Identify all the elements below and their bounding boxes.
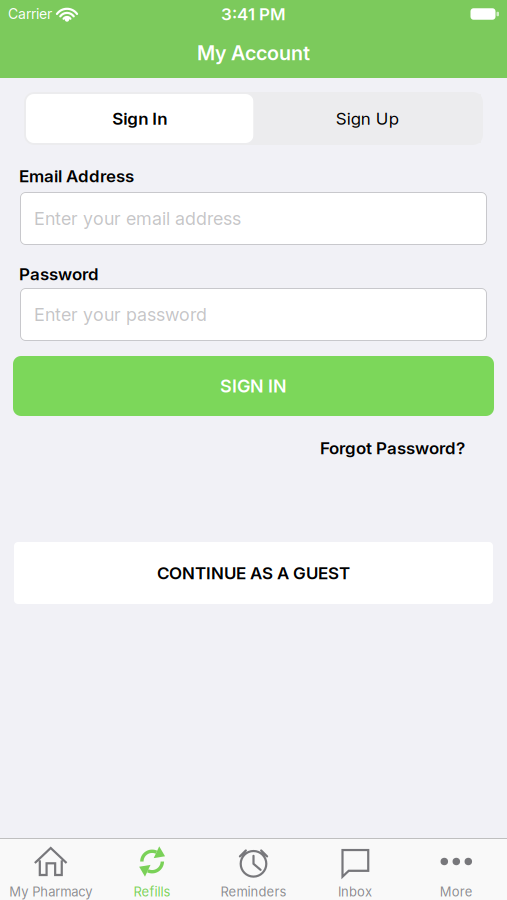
button[interactable]: CONTINUE AS A GUEST (0, 542, 507, 604)
button[interactable]: Sign In (26, 94, 253, 143)
button[interactable]: Forgot Password? (320, 438, 465, 458)
button[interactable]: Reminders (203, 845, 304, 899)
button[interactable]: Refills (101, 845, 203, 899)
staticText: Reminders (220, 884, 286, 899)
button[interactable]: SIGN IN (0, 356, 507, 416)
button[interactable]: My Pharmacy (0, 845, 101, 899)
staticText: Password (19, 264, 99, 284)
staticText: My Account (197, 41, 310, 65)
staticText: Forgot Password? (320, 438, 465, 458)
staticText: Carrier (8, 6, 52, 22)
staticText: Email Address (19, 166, 134, 186)
staticText: Enter your password (34, 304, 207, 325)
staticText: SIGN IN (220, 375, 287, 397)
staticText: Enter your email address (34, 208, 241, 229)
button[interactable]: More (406, 845, 507, 899)
button[interactable]: Sign Up (253, 94, 481, 143)
staticText: More (440, 884, 473, 899)
staticText: My Pharmacy (9, 884, 92, 899)
button[interactable]: Inbox (304, 845, 406, 899)
staticText: Sign In (112, 108, 167, 129)
staticText: Inbox (338, 884, 372, 899)
staticText: 3:41 PM (221, 4, 286, 24)
staticText: Sign Up (336, 108, 399, 129)
staticText: CONTINUE AS A GUEST (157, 563, 350, 583)
staticText: Refills (134, 884, 171, 899)
